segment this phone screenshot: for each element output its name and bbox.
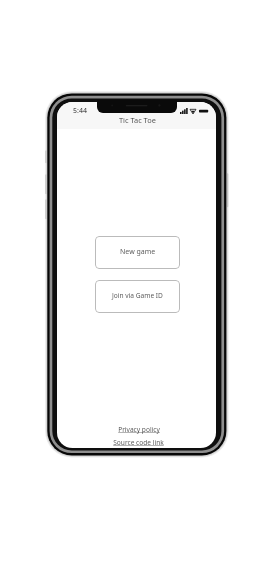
staticText: Join via Game ID: [112, 291, 163, 300]
button[interactable]: Privacy policy: [116, 425, 162, 434]
button[interactable]: Source code link: [111, 438, 166, 447]
other: Battery: [199, 108, 209, 114]
staticText: New game: [120, 247, 156, 257]
staticText: Privacy policy: [118, 425, 160, 434]
button[interactable]: New game: [95, 236, 180, 269]
other: Wi-Fi: [190, 108, 196, 114]
other: Cellular signal: [180, 108, 188, 114]
button[interactable]: Join via Game ID: [95, 280, 180, 313]
staticText: Source code link: [113, 438, 164, 447]
staticText: Tic Tac Toe: [119, 115, 156, 125]
staticText: 5:44: [73, 106, 87, 116]
